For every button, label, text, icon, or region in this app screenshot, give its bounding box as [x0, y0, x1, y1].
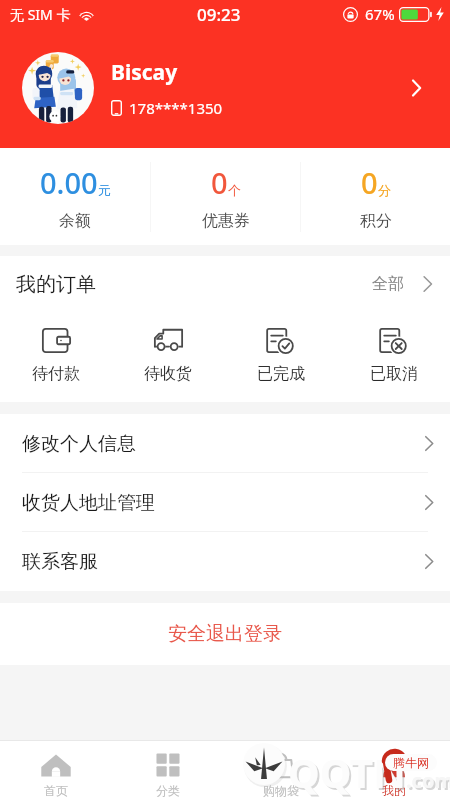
staticText: 腾牛网	[393, 755, 429, 770]
staticText: 安全退出登录	[168, 622, 282, 646]
staticText: 178****1350	[129, 98, 223, 118]
button[interactable]: 修改个人信息	[0, 414, 450, 473]
staticText: QQTN	[288, 745, 406, 799]
staticText: 优惠券	[202, 211, 250, 231]
staticText: 联系客服	[22, 550, 98, 574]
staticText: 分	[378, 182, 391, 198]
staticText: 09:23	[197, 3, 241, 26]
staticText: 收货人地址管理	[22, 491, 155, 515]
button[interactable]: Account details	[402, 75, 428, 101]
staticText: 个	[228, 182, 241, 198]
button[interactable]: 0	[301, 148, 450, 245]
staticText: 全部	[372, 274, 404, 294]
staticText: 分类	[156, 783, 180, 798]
button[interactable]: 待收货	[112, 312, 224, 402]
staticText: QQTN	[290, 747, 408, 800]
button[interactable]: 我的	[337, 741, 450, 800]
staticText: 待收货	[144, 364, 192, 384]
staticText: 0	[361, 163, 378, 202]
button[interactable]: 0.00	[0, 148, 150, 245]
staticText: 已完成	[257, 364, 305, 384]
button[interactable]: 全部	[368, 268, 440, 300]
staticText: 我的	[382, 783, 406, 798]
staticText: 修改个人信息	[22, 432, 136, 456]
button[interactable]: Biscay	[0, 28, 450, 148]
staticText: .com	[408, 769, 450, 796]
staticText: 待付款	[32, 364, 80, 384]
button[interactable]: 安全退出登录	[0, 603, 450, 665]
staticText: 67%	[365, 4, 395, 24]
staticText: 购物袋	[263, 783, 299, 798]
staticText: 积分	[360, 211, 392, 231]
button[interactable]: 0	[151, 148, 300, 245]
staticText: 首页	[44, 783, 68, 798]
staticText: 元	[98, 182, 111, 198]
staticText: 0	[211, 163, 228, 202]
button[interactable]: 待付款	[0, 312, 112, 402]
button[interactable]: 收货人地址管理	[0, 473, 450, 532]
button[interactable]: 分类	[112, 741, 224, 800]
staticText: 0.00	[40, 163, 98, 202]
staticText: 我的订单	[16, 272, 96, 297]
staticText: Biscay	[111, 58, 178, 87]
staticText: 余额	[59, 211, 91, 231]
staticText: .com	[406, 767, 450, 794]
button[interactable]: 首页	[0, 741, 112, 800]
button[interactable]: 已取消	[337, 312, 450, 402]
button[interactable]: 联系客服	[0, 532, 450, 591]
button[interactable]: 已完成	[224, 312, 337, 402]
staticText: 无 SIM 卡	[10, 5, 71, 24]
button[interactable]: 购物袋	[224, 741, 337, 800]
staticText: 已取消	[370, 364, 418, 384]
